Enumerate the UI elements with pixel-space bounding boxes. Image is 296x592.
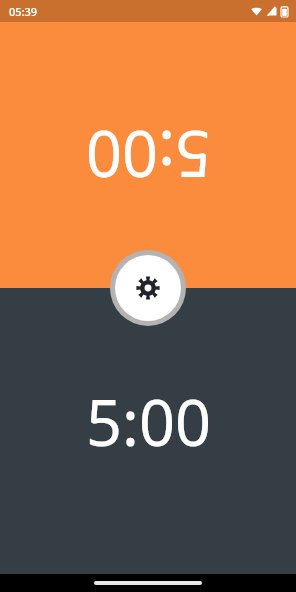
button[interactable]: 5:00 — [0, 0, 296, 288]
staticText: 5:00 — [86, 112, 211, 198]
button[interactable]: Settings — [110, 250, 186, 326]
button[interactable]: 5:00 — [0, 288, 296, 574]
staticText: 05:39 — [9, 4, 38, 19]
staticText: 5:00 — [86, 379, 211, 465]
